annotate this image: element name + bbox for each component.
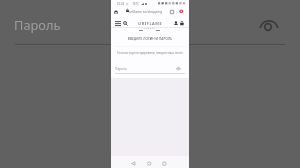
button[interactable]: Tabs	[170, 10, 174, 14]
staticText: Пароль	[14, 16, 61, 33]
button[interactable]: Home	[147, 161, 152, 166]
staticText: ВВЕДИТЕ ЛОГИН И ПАРОЛЬ	[111, 37, 189, 41]
staticText: SWEDEN	[144, 27, 156, 30]
button[interactable]: Cart	[180, 21, 184, 26]
button[interactable]: Back	[131, 161, 136, 166]
button[interactable]: Menu	[179, 9, 184, 14]
staticText: 10:24	[117, 2, 125, 6]
button[interactable]: Search	[123, 21, 128, 26]
staticText: Если вы зарегистрированы, введите ваш ло…	[111, 51, 189, 55]
button[interactable]: Recents	[162, 161, 167, 166]
staticText: Пароль	[115, 66, 127, 70]
staticText: oriflame.ru/shopping	[129, 9, 163, 13]
staticText: MTS	[133, 2, 139, 6]
button[interactable]: Account	[174, 21, 178, 26]
button[interactable]: Home	[114, 10, 118, 14]
button[interactable]: Menu	[115, 21, 121, 26]
button[interactable]: Show password	[255, 14, 283, 42]
button[interactable]: Show password	[175, 65, 182, 72]
staticText: ORIFLAME	[138, 21, 163, 26]
